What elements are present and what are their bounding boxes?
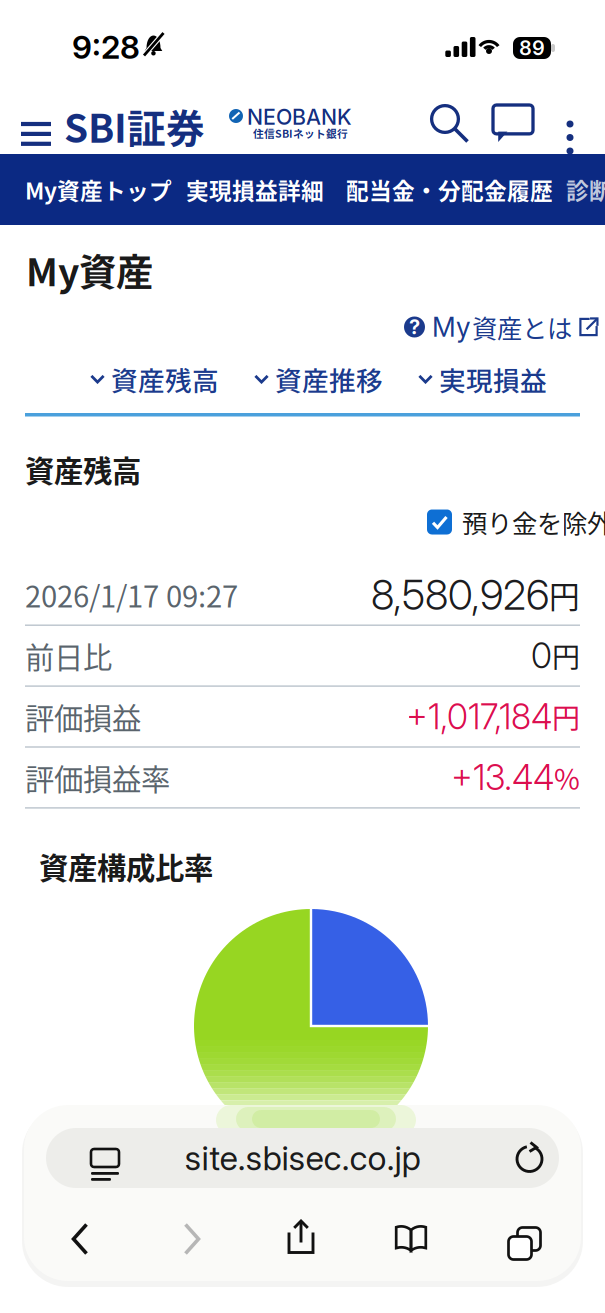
staticText: ? xyxy=(409,315,420,339)
staticText: 評価損益 xyxy=(25,695,141,738)
button[interactable]: Tabs xyxy=(482,1210,558,1268)
button[interactable]: Menu xyxy=(8,94,64,154)
button[interactable]: 診断 xyxy=(566,154,605,225)
staticText: +13.44 xyxy=(451,756,554,798)
staticText: 資産構成比率 xyxy=(39,845,213,887)
staticText: 実現損益詳細 xyxy=(186,173,324,206)
staticText: SBI証券 xyxy=(64,98,205,154)
staticText: 円 xyxy=(549,572,580,617)
staticText: 実現損益 xyxy=(439,360,547,398)
staticText: 9:28 xyxy=(72,28,140,66)
button[interactable]: Bookmarks xyxy=(373,1210,449,1268)
staticText: My資産 xyxy=(26,243,153,297)
staticText: My xyxy=(432,311,471,343)
button[interactable]: 実現損益 xyxy=(418,364,547,394)
button[interactable]: Share xyxy=(263,1208,339,1266)
button[interactable]: 配当金・分配金履歴 xyxy=(346,154,553,225)
button[interactable]: 資産推移 xyxy=(254,364,383,394)
button[interactable]: 資産残高 xyxy=(90,364,219,394)
button[interactable]: Search xyxy=(422,96,478,152)
button[interactable]: 実現損益詳細 xyxy=(186,154,324,225)
staticText: 資産推移 xyxy=(275,360,383,398)
staticText: 資産とは xyxy=(472,309,572,345)
staticText: 8,580,926 xyxy=(371,570,549,620)
button[interactable]: My資産トップ xyxy=(25,154,172,225)
button[interactable]: Chat xyxy=(485,96,541,152)
staticText: 評価損益率 xyxy=(25,756,170,799)
button[interactable]: NEOBANK xyxy=(229,105,364,145)
button[interactable]: Forward xyxy=(154,1210,230,1268)
staticText: 円 xyxy=(552,635,580,676)
staticText: 資産残高 xyxy=(25,448,141,490)
staticText: 2026/1/17 09:27 xyxy=(25,573,238,616)
staticText: 預り金を除外 xyxy=(462,504,605,540)
staticText: 配当金・分配金履歴 xyxy=(346,173,553,206)
staticText: My資産トップ xyxy=(25,173,172,206)
staticText: 0 xyxy=(531,635,552,677)
staticText: % xyxy=(554,757,580,798)
staticText: 円 xyxy=(552,696,580,737)
staticText: NEOBANK xyxy=(247,104,352,130)
button[interactable]: 預り金を除外 xyxy=(427,507,605,537)
staticText: +1,017,184 xyxy=(406,696,552,737)
staticText: 89 xyxy=(519,36,545,60)
staticText: 診断 xyxy=(566,173,605,206)
button[interactable]: Back xyxy=(42,1210,118,1268)
staticText: 資産残高 xyxy=(111,360,219,398)
staticText: site.sbisec.co.jp xyxy=(184,1138,420,1178)
button[interactable]: ? xyxy=(404,312,598,342)
button[interactable]: More options xyxy=(548,96,592,152)
button[interactable]: site.sbisec.co.jp xyxy=(46,1128,559,1188)
staticText: 前日比 xyxy=(25,634,112,677)
button[interactable]: SBI証券 xyxy=(64,99,224,153)
staticText: 住信SBIネット銀行 xyxy=(253,125,348,141)
